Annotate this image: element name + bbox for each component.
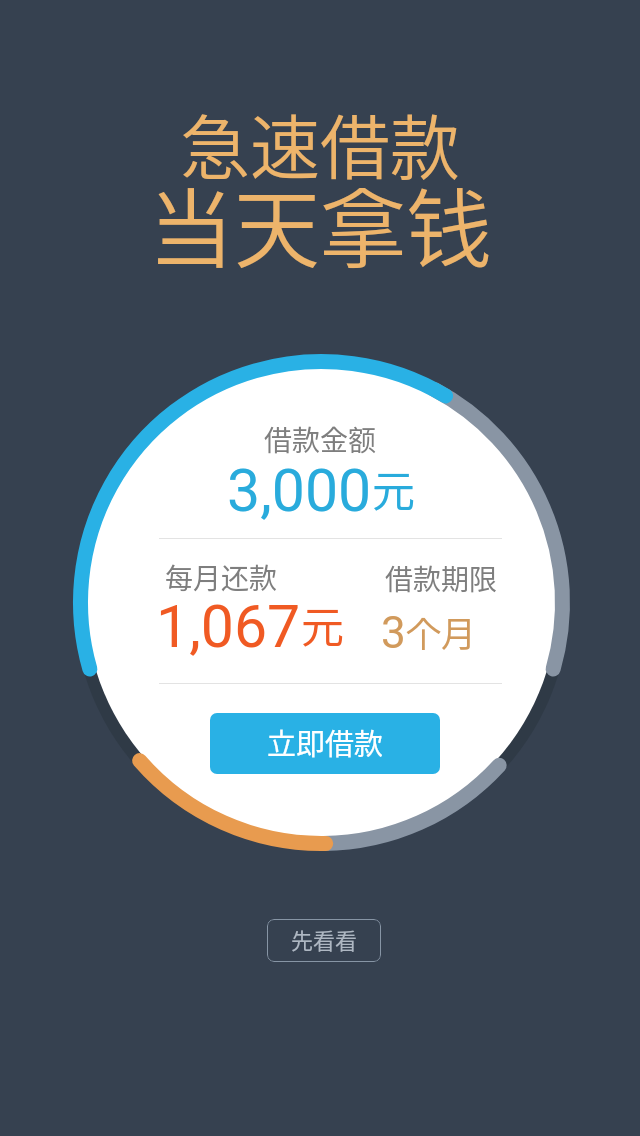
staticText: 急速借款 (0, 93, 640, 194)
staticText: 3,000 (227, 456, 372, 525)
button[interactable]: 立即借款 (210, 713, 440, 774)
staticText: 每月还款 (165, 557, 278, 598)
staticText: 当天拿钱 (0, 161, 640, 286)
staticText: 借款金额 (264, 419, 377, 460)
staticText: 立即借款 (267, 721, 384, 763)
staticText: 1,067 (156, 592, 301, 661)
staticText: 3 (381, 607, 406, 659)
staticText: 个月 (406, 606, 477, 657)
staticText: 借款期限 (385, 558, 498, 599)
staticText: 元 (372, 457, 415, 519)
staticText: 元 (301, 593, 344, 655)
staticText: 先看看 (291, 923, 358, 955)
button[interactable]: 先看看 (267, 919, 381, 962)
